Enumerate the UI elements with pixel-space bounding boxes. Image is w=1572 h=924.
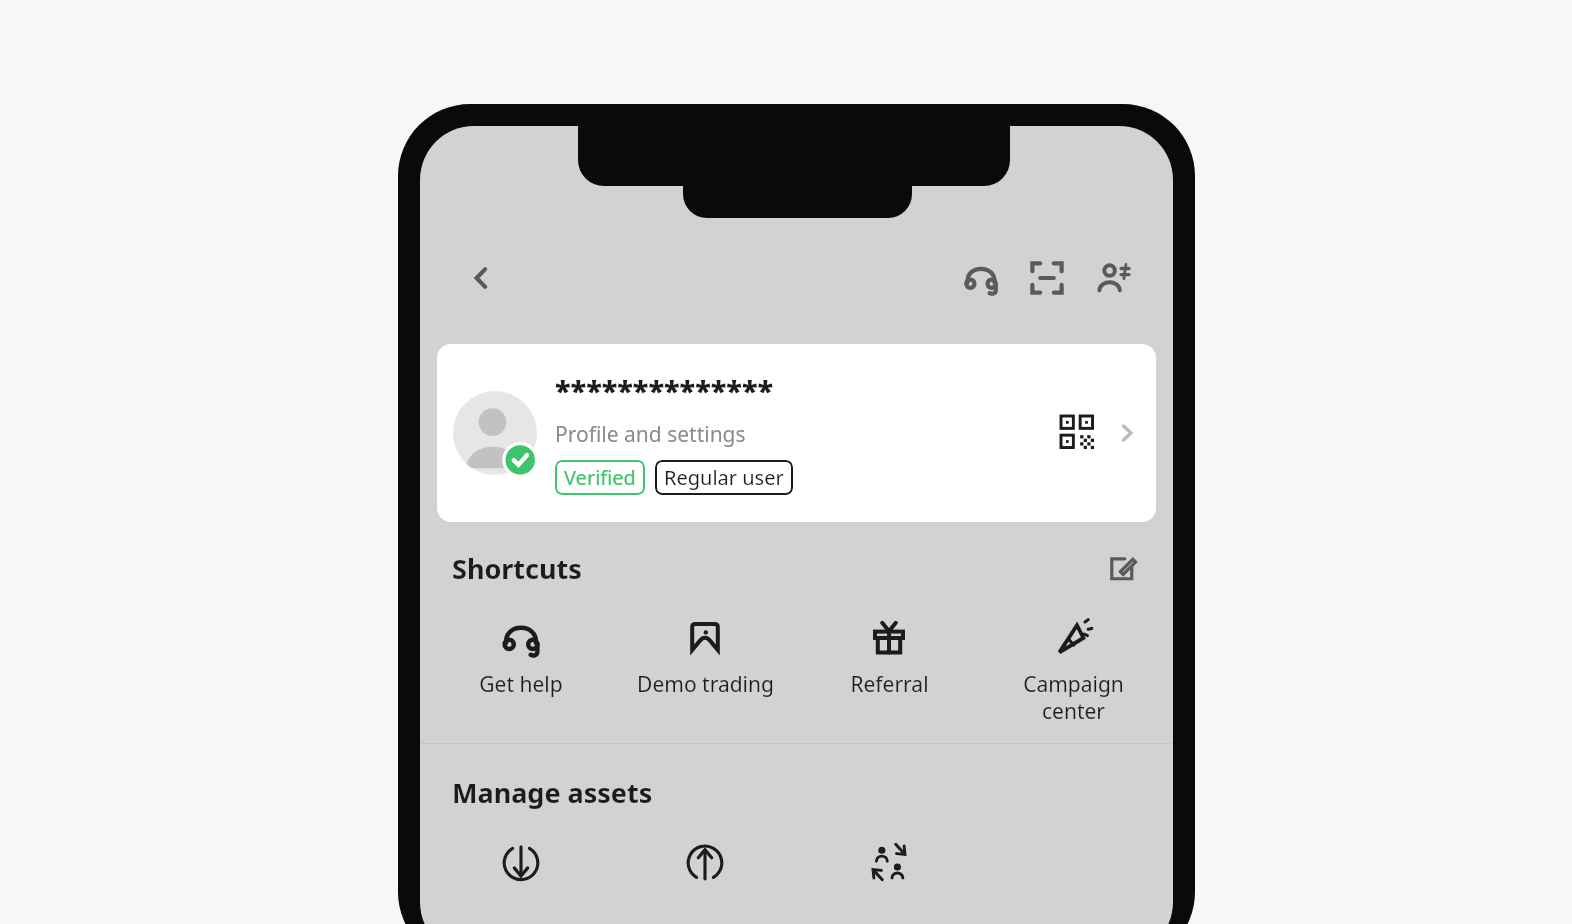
- button[interactable]: Transfer: [797, 841, 981, 883]
- staticText: Manage assets: [452, 774, 653, 811]
- button[interactable]: Referral: [797, 614, 981, 703]
- staticText: Referral: [850, 670, 929, 699]
- button[interactable]: Switch account: [1089, 254, 1137, 302]
- button[interactable]: Back: [458, 255, 504, 301]
- button[interactable]: Scan: [1023, 254, 1071, 302]
- button[interactable]: Withdraw: [613, 841, 797, 883]
- staticText: Regular user: [664, 464, 784, 491]
- button[interactable]: Demo trading: [613, 614, 797, 703]
- staticText: **************: [555, 371, 774, 410]
- button[interactable]: Get help: [428, 614, 613, 703]
- staticText: Profile and settings: [555, 420, 746, 449]
- button[interactable]: Customer support: [957, 254, 1005, 302]
- staticText: Demo trading: [637, 670, 774, 699]
- button[interactable]: Deposit: [428, 841, 613, 883]
- button[interactable]: Verified: [555, 460, 645, 495]
- staticText: Get help: [479, 670, 563, 699]
- button[interactable]: **************: [437, 344, 1156, 522]
- button[interactable]: QR code: [1056, 411, 1100, 455]
- staticText: Verified: [564, 464, 636, 491]
- staticText: Shortcuts: [452, 550, 582, 587]
- staticText: Campaign center: [1023, 670, 1124, 725]
- button[interactable]: Regular user: [655, 460, 793, 495]
- button[interactable]: Edit shortcuts: [1101, 548, 1141, 588]
- button[interactable]: Campaign center: [981, 614, 1165, 729]
